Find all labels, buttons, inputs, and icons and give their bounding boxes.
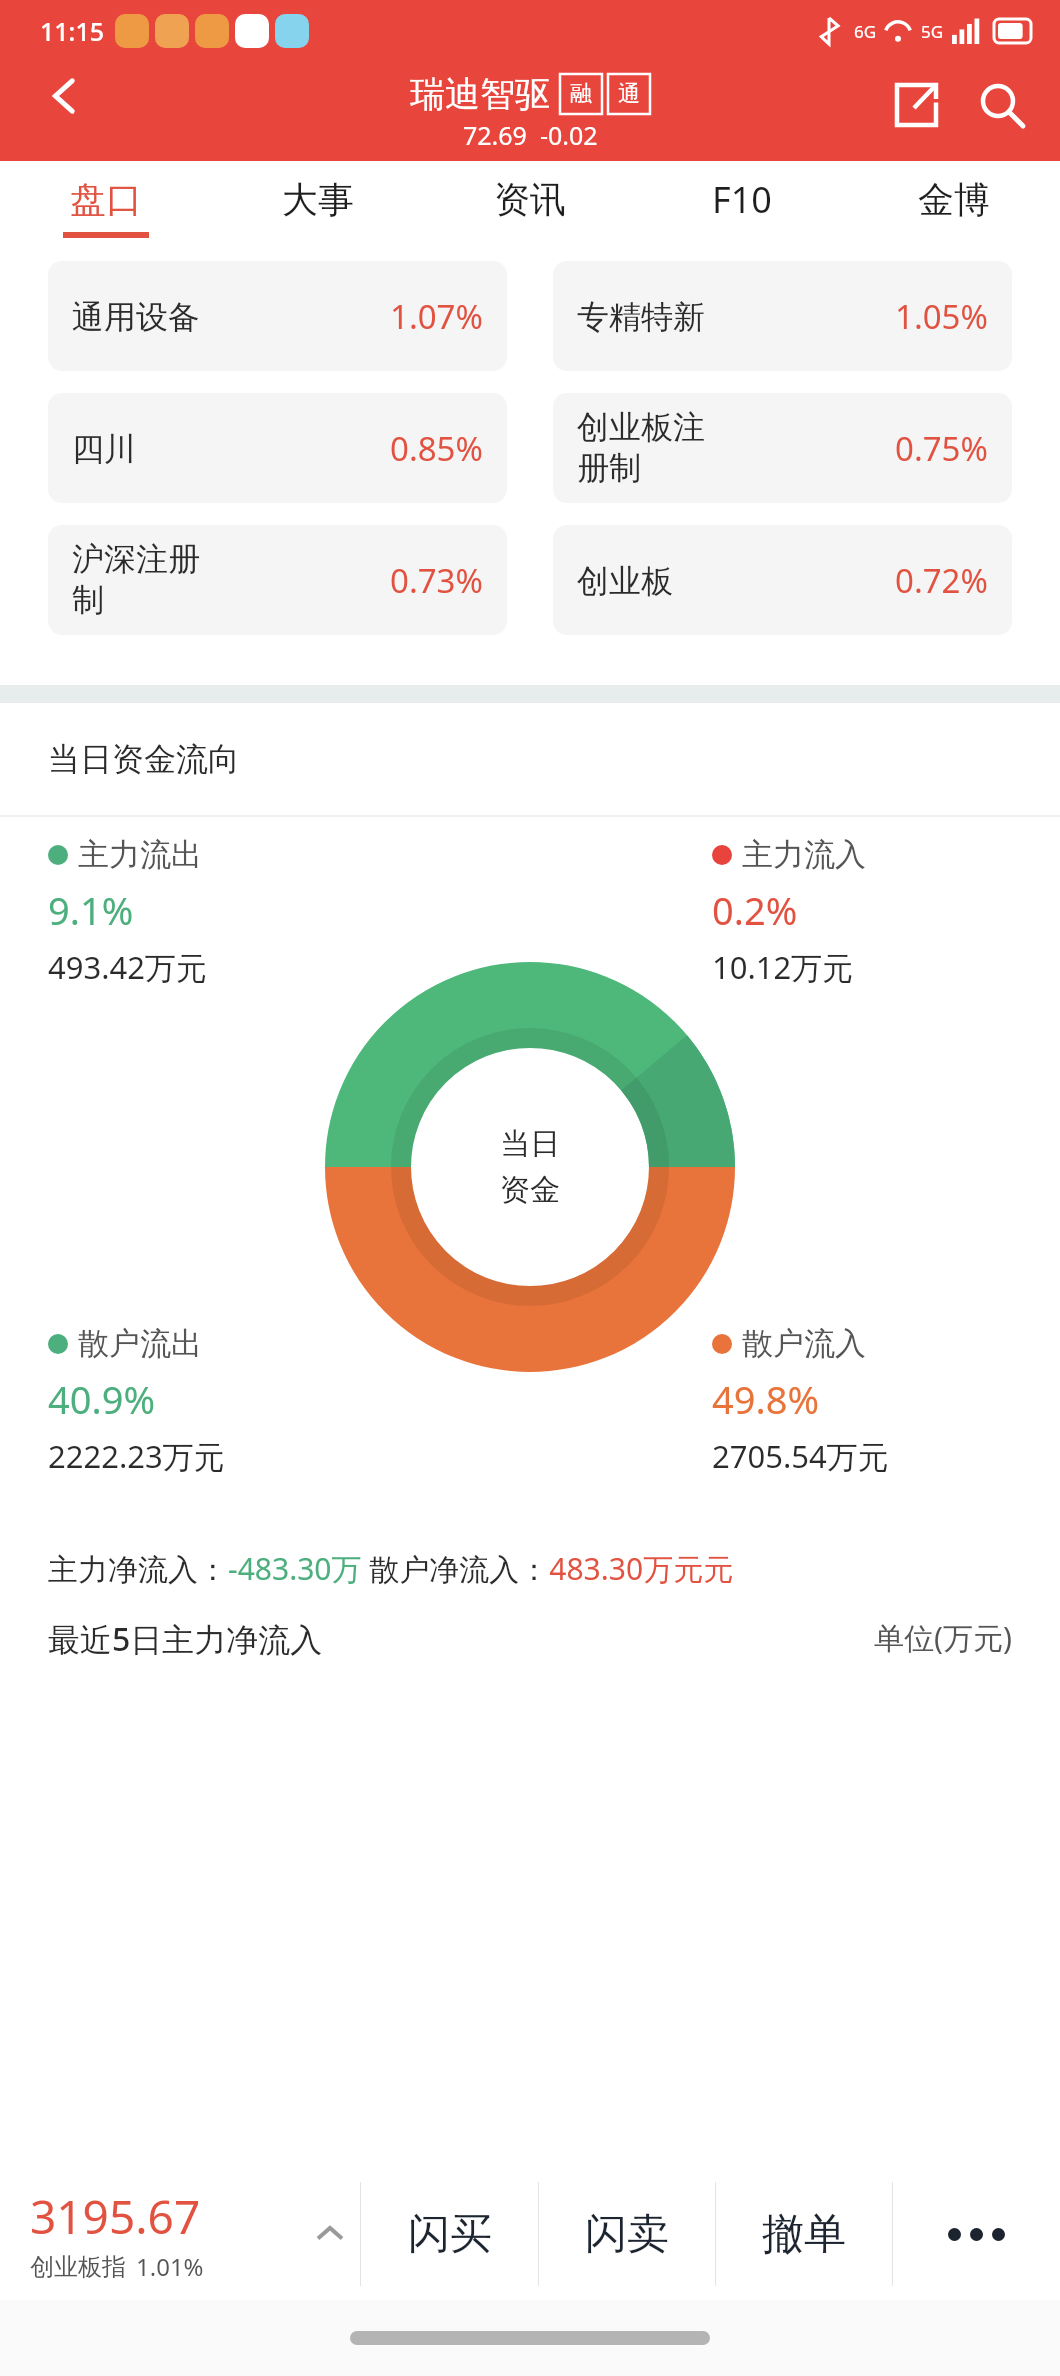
staticText: 0.75% [895,426,988,471]
staticText: 四川 [72,429,136,469]
staticText: 融 [570,80,592,108]
button[interactable]: Back [20,51,110,141]
staticText: 当日 [500,1125,560,1163]
staticText: 撤单 [762,2208,846,2261]
staticText: 散户流出 [78,1324,202,1363]
button[interactable]: Expand [300,2168,360,2300]
staticText: 40.9% [48,1373,155,1425]
staticText: 11:15 [40,14,105,48]
staticText: 沪深注册 制 [72,539,200,621]
button[interactable]: 创业板 [553,525,1012,635]
staticText: 创业板指 [30,2252,126,2282]
button[interactable]: 四川 [48,393,507,503]
staticText: 闪卖 [585,2208,669,2261]
button[interactable]: Search [972,75,1032,135]
staticText: 散户流入 [742,1324,866,1363]
button[interactable]: 闪买 [361,2168,538,2300]
staticText: 当日资金流向 [48,739,240,779]
staticText: 闪买 [408,2208,492,2261]
staticText: 主力流出 [78,835,202,874]
staticText: 通用设备 [72,297,200,337]
staticText: 大事 [282,177,354,222]
staticText: 0.73% [390,558,483,603]
button[interactable]: Share [886,75,946,135]
button[interactable]: F10 [636,161,848,253]
staticText: F10 [712,175,772,224]
staticText: 1.01% [136,2250,204,2283]
staticText: 3195.67 [30,2185,201,2248]
staticText: 6G [854,20,877,43]
staticText: 资讯 [494,177,566,222]
staticText: 72.69 -0.02 [463,118,598,152]
button[interactable]: 3195.67 [30,2185,300,2283]
button[interactable]: 大事 [212,161,424,253]
button[interactable]: 金博 [848,161,1060,253]
staticText: 盘口 [70,177,142,222]
staticText: 主力流入 [742,835,866,874]
staticText: 10.12万元 [712,946,854,988]
button[interactable]: 通用设备 [48,261,507,371]
staticText: 9.1% [48,884,134,936]
staticText: 493.42万元 [48,946,207,988]
staticText: 主力净流入：-483.30万 散户净流入：483.30万元元 [48,1548,734,1589]
staticText: 金博 [918,177,990,222]
button[interactable]: More [893,2168,1060,2300]
staticText: 创业板 [577,561,673,601]
staticText: 最近5日主力净流入 [48,1617,323,1661]
staticText: 瑞迪智驱 [410,72,550,116]
button[interactable]: 沪深注册 制 [48,525,507,635]
staticText: 0.72% [895,558,988,603]
staticText: 单位(万元) [874,1617,1012,1658]
staticText: 2705.54万元 [712,1435,889,1477]
staticText: 创业板注 册制 [577,407,705,489]
staticText: 通 [618,80,640,108]
staticText: 0.2% [712,884,798,936]
staticText: 资金 [500,1171,560,1209]
staticText: 49.8% [712,1373,819,1425]
staticText: 2222.23万元 [48,1435,225,1477]
button[interactable]: 盘口 [0,161,212,253]
button[interactable]: 闪卖 [539,2168,715,2300]
staticText: 1.07% [390,294,483,339]
button[interactable]: 撤单 [716,2168,892,2300]
staticText: 1.05% [895,294,988,339]
staticText: 专精特新 [577,297,705,337]
button[interactable]: 创业板注 册制 [553,393,1012,503]
button[interactable]: 专精特新 [553,261,1012,371]
staticText: 5G [921,20,944,43]
button[interactable]: 资讯 [424,161,636,253]
staticText: 0.85% [390,426,483,471]
